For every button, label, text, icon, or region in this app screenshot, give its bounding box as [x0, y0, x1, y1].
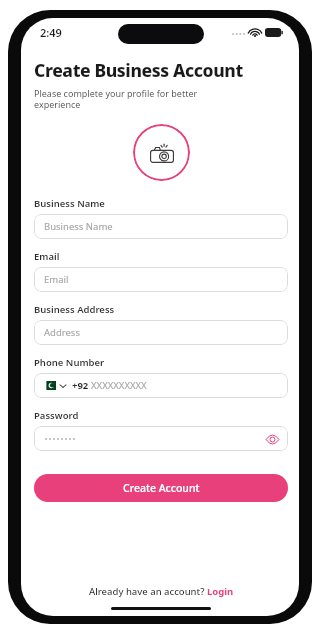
staticText: Email — [34, 250, 60, 263]
staticText: XXXXXXXXXX — [91, 379, 147, 392]
staticText: Business Address — [34, 303, 115, 316]
button[interactable]: Upload business photo — [133, 124, 190, 181]
staticText: Password — [34, 409, 79, 422]
staticText: Create Business Account — [34, 58, 243, 82]
staticText: 2:49 — [40, 25, 62, 40]
staticText: Email — [44, 273, 69, 286]
staticText: Login — [207, 585, 234, 598]
button[interactable]: Show password — [264, 431, 280, 447]
staticText: Address — [44, 326, 80, 339]
button[interactable]: Business Name — [34, 214, 288, 239]
staticText: Create Account — [123, 481, 200, 495]
staticText: +92 — [72, 379, 89, 392]
button[interactable]: Show password — [34, 426, 288, 451]
staticText: Business Name — [34, 197, 105, 210]
staticText: Please complete your profile for better … — [34, 87, 198, 111]
button[interactable]: Already have an account? — [34, 582, 288, 601]
button[interactable]: +92 — [34, 373, 288, 398]
staticText: Business Name — [44, 220, 113, 233]
button[interactable]: Address — [34, 320, 288, 345]
button[interactable]: Email — [34, 267, 288, 292]
staticText: Phone Number — [34, 356, 105, 369]
staticText: Already have an account? — [89, 585, 207, 598]
button[interactable]: Create Account — [34, 474, 288, 502]
